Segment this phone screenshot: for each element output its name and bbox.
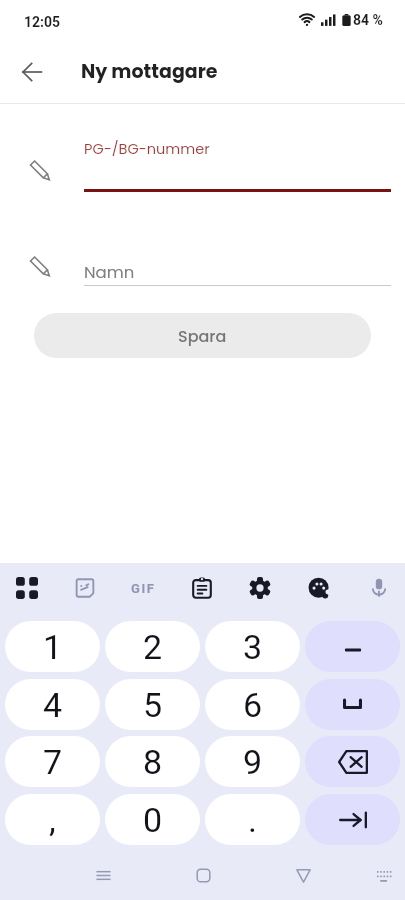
staticText: 1 bbox=[43, 627, 63, 667]
staticText: 5 bbox=[143, 685, 163, 725]
button[interactable]: Keyboard layouts bbox=[1, 563, 53, 613]
button[interactable]: tab bbox=[305, 794, 400, 845]
button[interactable]: GIF bbox=[117, 563, 169, 613]
button[interactable]: 6 bbox=[205, 679, 300, 730]
button[interactable]: Spara bbox=[34, 313, 371, 358]
button[interactable]: 2 bbox=[105, 621, 200, 672]
staticText: Namn bbox=[84, 261, 135, 284]
staticText: GIF bbox=[131, 581, 156, 596]
button[interactable]: backspace bbox=[305, 736, 400, 787]
staticText: , bbox=[49, 800, 56, 840]
button[interactable]: Back bbox=[283, 855, 323, 895]
staticText: 9 bbox=[243, 742, 263, 782]
button[interactable]: 5 bbox=[105, 679, 200, 730]
button[interactable]: , bbox=[5, 794, 100, 845]
button[interactable]: Settings bbox=[234, 563, 286, 613]
button[interactable]: Voice input bbox=[353, 563, 405, 613]
staticText: Spara bbox=[178, 325, 227, 347]
button[interactable]: 1 bbox=[5, 621, 100, 672]
staticText: 84 % bbox=[353, 12, 383, 28]
staticText: 8 bbox=[143, 742, 163, 782]
button[interactable]: 4 bbox=[5, 679, 100, 730]
button[interactable]: . bbox=[205, 794, 300, 845]
staticText: PG-/BG-nummer bbox=[84, 139, 210, 159]
button[interactable]: Theme bbox=[293, 563, 345, 613]
button[interactable]: Back bbox=[8, 48, 56, 96]
staticText: . bbox=[248, 800, 257, 840]
staticText: 6 bbox=[243, 685, 263, 725]
staticText: 0 bbox=[143, 800, 163, 840]
button[interactable]: 8 bbox=[105, 736, 200, 787]
button[interactable]: space bbox=[305, 679, 400, 730]
staticText: 4 bbox=[43, 685, 63, 725]
button[interactable]: Change keyboard bbox=[363, 855, 403, 895]
staticText: 3 bbox=[243, 627, 263, 667]
button[interactable]: Recent apps bbox=[83, 855, 123, 895]
button[interactable]: minus bbox=[305, 621, 400, 672]
staticText: 7 bbox=[43, 742, 63, 782]
button[interactable]: 0 bbox=[105, 794, 200, 845]
button[interactable]: 3 bbox=[205, 621, 300, 672]
staticText: 12:05 bbox=[24, 14, 61, 30]
staticText: 2 bbox=[143, 627, 163, 667]
button[interactable]: 7 bbox=[5, 736, 100, 787]
button[interactable]: Clipboard bbox=[176, 563, 228, 613]
button[interactable]: 9 bbox=[205, 736, 300, 787]
button[interactable]: Home bbox=[183, 855, 223, 895]
staticText: Ny mottagare bbox=[81, 58, 218, 85]
button[interactable]: Stickers bbox=[59, 563, 111, 613]
